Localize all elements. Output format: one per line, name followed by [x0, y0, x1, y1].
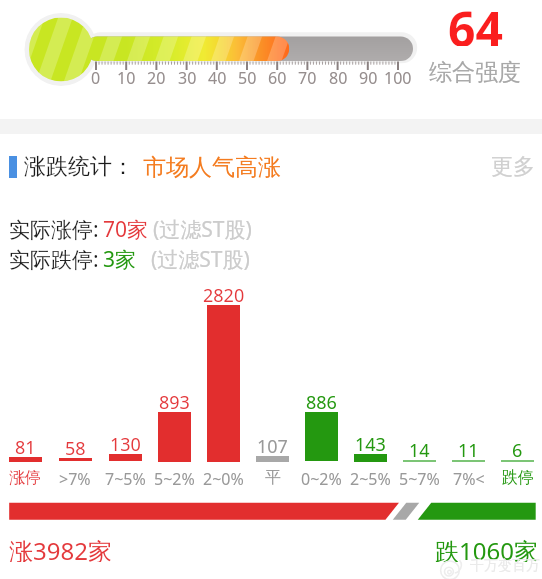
staticText: 58 [65, 436, 86, 461]
staticText: 涨跌统计： [24, 153, 134, 181]
staticText: 2~0% [203, 468, 244, 490]
staticText: 14 [409, 438, 430, 463]
staticText: 30 [178, 67, 197, 89]
staticText: 平 [265, 468, 281, 488]
staticText: 130 [110, 432, 141, 457]
staticText: 综合强度 [429, 58, 521, 87]
staticText: 3家 [103, 245, 137, 274]
staticText: 143 [355, 432, 386, 457]
button[interactable]: 14 [395, 290, 444, 490]
staticText: 7%< [453, 468, 485, 490]
staticText: 跌1060家 [435, 534, 538, 562]
staticText: 10 [117, 67, 136, 89]
button[interactable]: 81 [0, 290, 50, 490]
button[interactable]: 更多 [491, 153, 535, 181]
staticText: 市场人气高涨 [143, 153, 281, 182]
staticText: 5~7% [399, 468, 440, 490]
staticText: 64 [448, 0, 503, 46]
staticText: 2820 [203, 283, 245, 308]
button[interactable]: 6 [493, 290, 542, 490]
staticText: 0~2% [301, 468, 342, 490]
button[interactable]: 893 [150, 290, 199, 490]
staticText: 0 [91, 67, 101, 89]
staticText: 50 [238, 67, 257, 89]
staticText: 100 [384, 67, 412, 89]
staticText: 20 [147, 67, 166, 89]
staticText: (过滤ST股) [151, 245, 250, 274]
button[interactable]: 130 [100, 290, 150, 490]
staticText: 涨3982家 [9, 534, 112, 562]
staticText: 886 [306, 390, 337, 415]
staticText: 跌停 [502, 468, 534, 488]
staticText: 更多 [491, 153, 535, 181]
button[interactable]: 143 [346, 290, 395, 490]
staticText: 实际涨停: [9, 215, 99, 244]
staticText: 实际跌停: [9, 245, 99, 274]
button[interactable]: 11 [444, 290, 493, 490]
button[interactable]: 58 [50, 290, 100, 490]
staticText: 11 [458, 438, 479, 463]
button[interactable]: 886 [297, 290, 346, 490]
staticText: 60 [268, 67, 287, 89]
staticText: 107 [257, 434, 288, 459]
staticText: (过滤ST股) [153, 215, 252, 244]
staticText: 千万变百万 [470, 557, 540, 575]
button[interactable]: 107 [248, 290, 297, 490]
staticText: 90 [359, 67, 378, 89]
staticText: 70家 [103, 215, 149, 244]
staticText: 6 [512, 438, 523, 463]
staticText: 5~2% [154, 468, 195, 490]
staticText: 40 [208, 67, 227, 89]
staticText: 7~5% [105, 468, 146, 490]
button[interactable]: 2820 [199, 290, 248, 490]
staticText: 涨停 [9, 468, 41, 488]
staticText: 80 [329, 67, 348, 89]
staticText: 893 [159, 390, 190, 415]
staticText: >7% [59, 468, 91, 490]
staticText: 70 [298, 67, 317, 89]
staticText: 81 [15, 435, 36, 460]
staticText: 2~5% [350, 468, 391, 490]
